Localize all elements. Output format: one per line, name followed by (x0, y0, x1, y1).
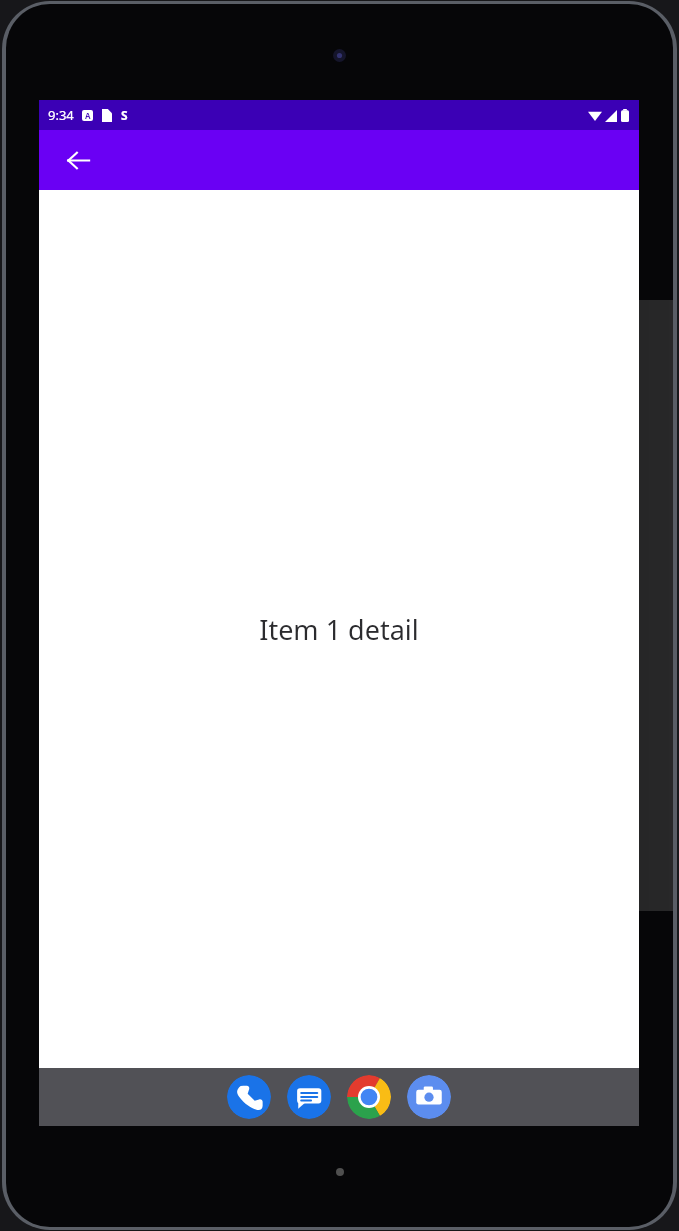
staticText: A (85, 110, 91, 121)
staticText: 9:34 (48, 106, 74, 124)
staticText: Item 1 detail (259, 611, 419, 648)
button[interactable]: Camera (407, 1075, 451, 1119)
button[interactable]: Messages (287, 1075, 331, 1119)
button[interactable]: Navigate up (57, 139, 99, 181)
button[interactable]: Chrome (347, 1075, 391, 1119)
staticText: S (121, 107, 128, 123)
button[interactable]: Phone (227, 1075, 271, 1119)
